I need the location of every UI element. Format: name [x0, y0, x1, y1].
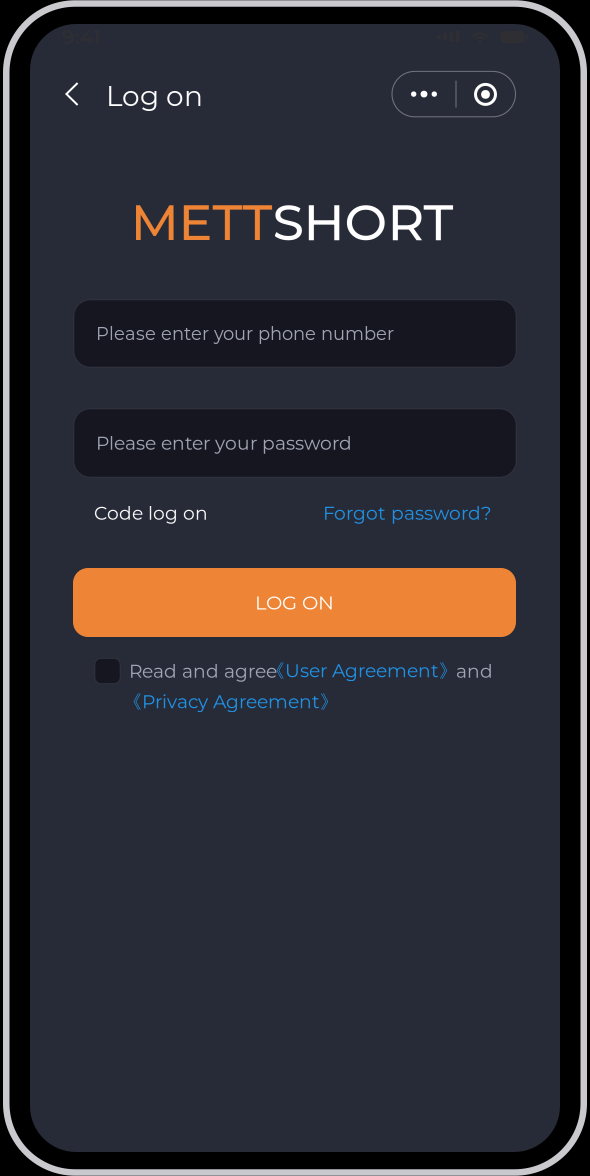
staticText: Please enter your password [96, 432, 352, 454]
staticText: Log on [106, 79, 203, 113]
button[interactable]: More options [392, 71, 515, 117]
button[interactable]: LOG ON [73, 568, 516, 637]
staticText: Read and agree [129, 660, 277, 682]
button[interactable]: Forgot password? [323, 493, 492, 533]
button[interactable]: Agree to the agreements [90, 654, 125, 688]
staticText: Please enter your phone number [96, 323, 394, 344]
button[interactable]: Please enter your password [74, 409, 516, 477]
staticText: 《Privacy Agreement》 [123, 690, 339, 714]
button[interactable]: Back [49, 70, 95, 118]
staticText: Forgot password? [323, 502, 492, 524]
staticText: 9:41 [62, 25, 101, 49]
staticText: LOG ON [255, 591, 334, 614]
button[interactable]: Please enter your phone number [74, 300, 516, 367]
staticText: 《User Agreement》 [266, 659, 458, 683]
button[interactable]: 《User Agreement》 [266, 654, 456, 688]
button[interactable]: 《Privacy Agreement》 [123, 685, 338, 719]
staticText: and [456, 660, 493, 682]
staticText: SHORT [272, 191, 453, 253]
staticText: METT [130, 191, 272, 253]
staticText: Code log on [94, 502, 208, 524]
button[interactable]: Code log on [94, 493, 208, 533]
